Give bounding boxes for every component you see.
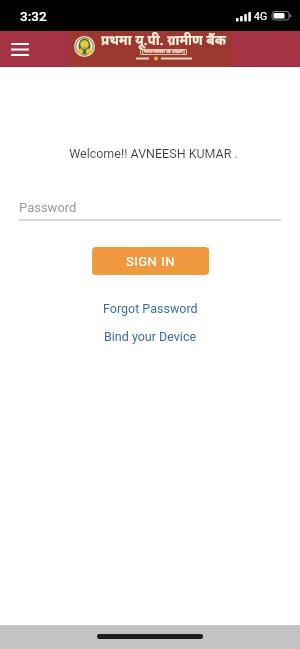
staticText: (भारत सरकार का उपक्रम): [142, 49, 185, 55]
button[interactable]: [0, 31, 40, 67]
staticText: 3:32: [20, 8, 47, 24]
button[interactable]: Forgot Password: [99, 297, 202, 320]
staticText: Password: [19, 200, 77, 215]
staticText: प्रथमा यू.पी. ग्रामीण बैंक: [101, 31, 226, 49]
staticText: 4G: [254, 10, 268, 22]
button[interactable]: Bind your Device: [100, 325, 201, 348]
staticText: Welcome!! AVNEESH KUMAR .: [69, 146, 238, 161]
staticText: Forgot Password: [103, 301, 198, 316]
button[interactable]: SIGN IN: [92, 247, 209, 275]
staticText: Bind your Device: [104, 329, 197, 344]
staticText: SIGN IN: [126, 254, 175, 269]
